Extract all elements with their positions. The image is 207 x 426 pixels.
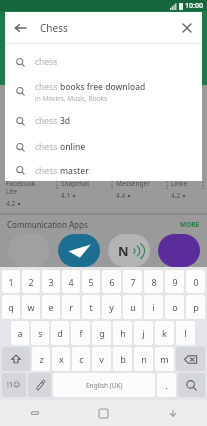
button[interactable]: w xyxy=(22,295,40,319)
button[interactable]: Back xyxy=(5,12,202,43)
button[interactable]: u xyxy=(123,295,142,319)
button[interactable]: m xyxy=(155,347,174,371)
button[interactable]: q xyxy=(2,295,20,319)
staticText: 0 xyxy=(193,276,199,288)
staticText: Facebook Lite xyxy=(6,179,36,196)
staticText: 4 xyxy=(68,276,74,288)
staticText: h xyxy=(120,327,126,339)
staticText: chess xyxy=(35,81,60,93)
button[interactable]: Shift xyxy=(2,347,30,371)
staticText: s xyxy=(38,327,43,339)
staticText: q xyxy=(8,301,14,313)
staticText: f xyxy=(79,327,83,339)
staticText: v xyxy=(99,353,104,365)
staticText: Messenger xyxy=(116,179,150,188)
button[interactable]: Back xyxy=(5,13,35,43)
staticText: e xyxy=(48,301,54,313)
button[interactable]: c xyxy=(72,347,90,371)
button[interactable]: o xyxy=(165,295,184,319)
staticText: b xyxy=(120,353,126,365)
staticText: n xyxy=(141,353,147,365)
staticText: . xyxy=(165,379,168,391)
button[interactable]: e xyxy=(42,295,60,319)
staticText: 7 xyxy=(130,276,136,288)
staticText: 8 xyxy=(151,276,157,288)
button[interactable]: Recents xyxy=(0,400,69,426)
button[interactable]: Handwriting xyxy=(28,373,51,397)
button[interactable]: y xyxy=(102,295,121,319)
staticText: c xyxy=(79,353,84,365)
button[interactable]: s xyxy=(31,321,49,345)
button[interactable]: 1 xyxy=(2,270,20,293)
button[interactable]: chess xyxy=(5,160,202,181)
button[interactable]: 8 xyxy=(144,270,163,293)
button[interactable]: chess xyxy=(5,134,202,160)
button[interactable]: t xyxy=(82,295,100,319)
button[interactable]: 4 xyxy=(62,270,80,293)
staticText: in Movies, Music, Books xyxy=(35,94,108,103)
button[interactable]: Symbols xyxy=(2,373,26,397)
button[interactable]: 2 xyxy=(22,270,40,293)
button[interactable]: 9 xyxy=(165,270,184,293)
button[interactable]: r xyxy=(62,295,80,319)
staticText: o xyxy=(172,301,178,313)
staticText: Communication Apps xyxy=(7,219,88,230)
staticText: books free download xyxy=(60,81,146,93)
button[interactable]: chess xyxy=(5,108,202,134)
button[interactable]: v xyxy=(92,347,111,371)
button[interactable]: 3 xyxy=(42,270,60,293)
staticText: 4.4 xyxy=(116,191,126,200)
button[interactable]: b xyxy=(113,347,132,371)
button[interactable]: p xyxy=(186,295,205,319)
button[interactable]: l xyxy=(176,321,195,345)
button[interactable]: n xyxy=(134,347,153,371)
staticText: English (UK) xyxy=(86,381,123,390)
staticText: k xyxy=(162,327,167,339)
staticText: Chess xyxy=(40,21,68,35)
staticText: Snapchat xyxy=(61,179,90,188)
button[interactable]: 7 xyxy=(123,270,142,293)
button[interactable]: x xyxy=(52,347,70,371)
staticText: 10:00 xyxy=(185,1,203,11)
button[interactable]: z xyxy=(32,347,50,371)
button[interactable]: a xyxy=(11,321,29,345)
button[interactable]: 0 xyxy=(186,270,205,293)
staticText: 6 xyxy=(109,276,115,288)
button[interactable]: Search xyxy=(178,373,205,397)
staticText: chess xyxy=(35,115,60,127)
button[interactable]: chess xyxy=(5,75,202,108)
staticText: 1 xyxy=(8,276,14,288)
staticText: online xyxy=(60,141,86,153)
staticText: 4.2 xyxy=(171,191,181,200)
staticText: !1☺ xyxy=(7,380,21,390)
button[interactable]: g xyxy=(92,321,111,345)
button[interactable]: k xyxy=(155,321,174,345)
button[interactable]: Hide keyboard xyxy=(138,400,207,426)
button[interactable]: English (UK) xyxy=(53,373,155,397)
button[interactable]: Clear xyxy=(172,13,202,43)
button[interactable]: . xyxy=(157,373,176,397)
button[interactable]: Communication Apps xyxy=(7,219,200,230)
staticText: l xyxy=(184,327,187,339)
button[interactable]: d xyxy=(51,321,69,345)
button[interactable]: chess xyxy=(5,49,202,75)
button[interactable]: h xyxy=(113,321,132,345)
staticText: w xyxy=(27,301,35,313)
staticText: 5 xyxy=(88,276,94,288)
staticText: x xyxy=(59,353,64,365)
staticText: chess xyxy=(35,141,60,153)
staticText: j xyxy=(142,327,145,339)
staticText: 4.1 xyxy=(61,191,71,200)
button[interactable]: 5 xyxy=(82,270,100,293)
button[interactable]: f xyxy=(71,321,90,345)
button[interactable]: 6 xyxy=(102,270,121,293)
button[interactable]: i xyxy=(144,295,163,319)
staticText: a xyxy=(17,327,23,339)
staticText: MORE xyxy=(180,220,200,229)
staticText: Linke xyxy=(171,179,188,188)
staticText: u xyxy=(130,301,136,313)
button[interactable]: Home xyxy=(69,400,138,426)
staticText: r xyxy=(69,301,73,313)
button[interactable]: Backspace xyxy=(176,347,205,371)
button[interactable]: j xyxy=(134,321,153,345)
